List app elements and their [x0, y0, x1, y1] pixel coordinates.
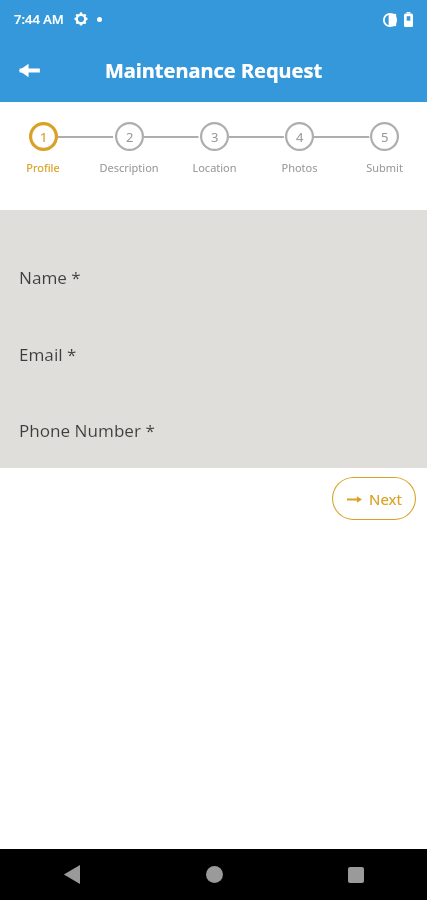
button[interactable]: Name *: [0, 239, 427, 316]
staticText: Description: [99, 160, 159, 175]
button[interactable]: 3: [172, 122, 257, 175]
staticText: 4: [296, 128, 304, 146]
staticText: 1: [40, 128, 48, 146]
button[interactable]: 1: [0, 122, 86, 175]
button[interactable]: Home: [143, 849, 285, 900]
staticText: 7:44 AM: [14, 10, 64, 28]
button[interactable]: Next: [332, 477, 416, 520]
staticText: Next: [369, 489, 402, 509]
staticText: Photos: [281, 160, 318, 175]
button[interactable]: 5: [342, 122, 427, 175]
staticText: Email *: [19, 343, 77, 366]
staticText: 3: [211, 128, 219, 146]
staticText: 5: [381, 128, 389, 146]
button[interactable]: Back: [0, 849, 143, 900]
staticText: Name *: [19, 266, 81, 289]
button[interactable]: Phone Number *: [0, 393, 427, 468]
button[interactable]: 2: [86, 122, 172, 175]
staticText: Location: [192, 160, 237, 175]
staticText: Phone Number *: [19, 419, 155, 442]
staticText: Profile: [26, 160, 60, 175]
button[interactable]: Recent apps: [285, 849, 427, 900]
button[interactable]: 4: [257, 122, 342, 175]
staticText: Submit: [366, 160, 403, 175]
button[interactable]: Back: [8, 49, 50, 91]
staticText: 2: [126, 128, 134, 146]
button[interactable]: Email *: [0, 316, 427, 393]
staticText: Maintenance Request: [105, 57, 323, 84]
